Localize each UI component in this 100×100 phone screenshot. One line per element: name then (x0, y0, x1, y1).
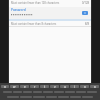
staticText: p (94, 85, 96, 88)
staticText: u (64, 85, 66, 88)
button[interactable]: r (30, 85, 39, 88)
button[interactable]: q (1, 85, 9, 88)
staticText: q (4, 85, 6, 88)
staticText: 0/128 (82, 1, 89, 5)
staticText: r (34, 85, 36, 88)
staticText: Must contain fewer than 128 characters (11, 1, 60, 5)
button[interactable]: e (20, 85, 29, 88)
button[interactable]: y (50, 85, 59, 88)
button[interactable]: Show password (82, 11, 88, 15)
staticText: Password (11, 8, 26, 12)
button[interactable]: Password (9, 7, 91, 19)
staticText: Must contain fewer than 8 characters (11, 22, 57, 26)
button[interactable]: t (40, 85, 49, 88)
button[interactable]: o (80, 85, 89, 88)
staticText: t (44, 85, 46, 88)
staticText: o (84, 85, 86, 88)
staticText: y (54, 85, 56, 88)
staticText: w (13, 85, 16, 88)
button[interactable]: u (60, 85, 69, 88)
staticText: e (24, 85, 26, 88)
staticText: i (74, 85, 75, 88)
button[interactable]: p (90, 85, 99, 88)
button[interactable]: w (10, 85, 19, 88)
button[interactable]: i (70, 85, 79, 88)
staticText: 8/8 (85, 22, 89, 26)
